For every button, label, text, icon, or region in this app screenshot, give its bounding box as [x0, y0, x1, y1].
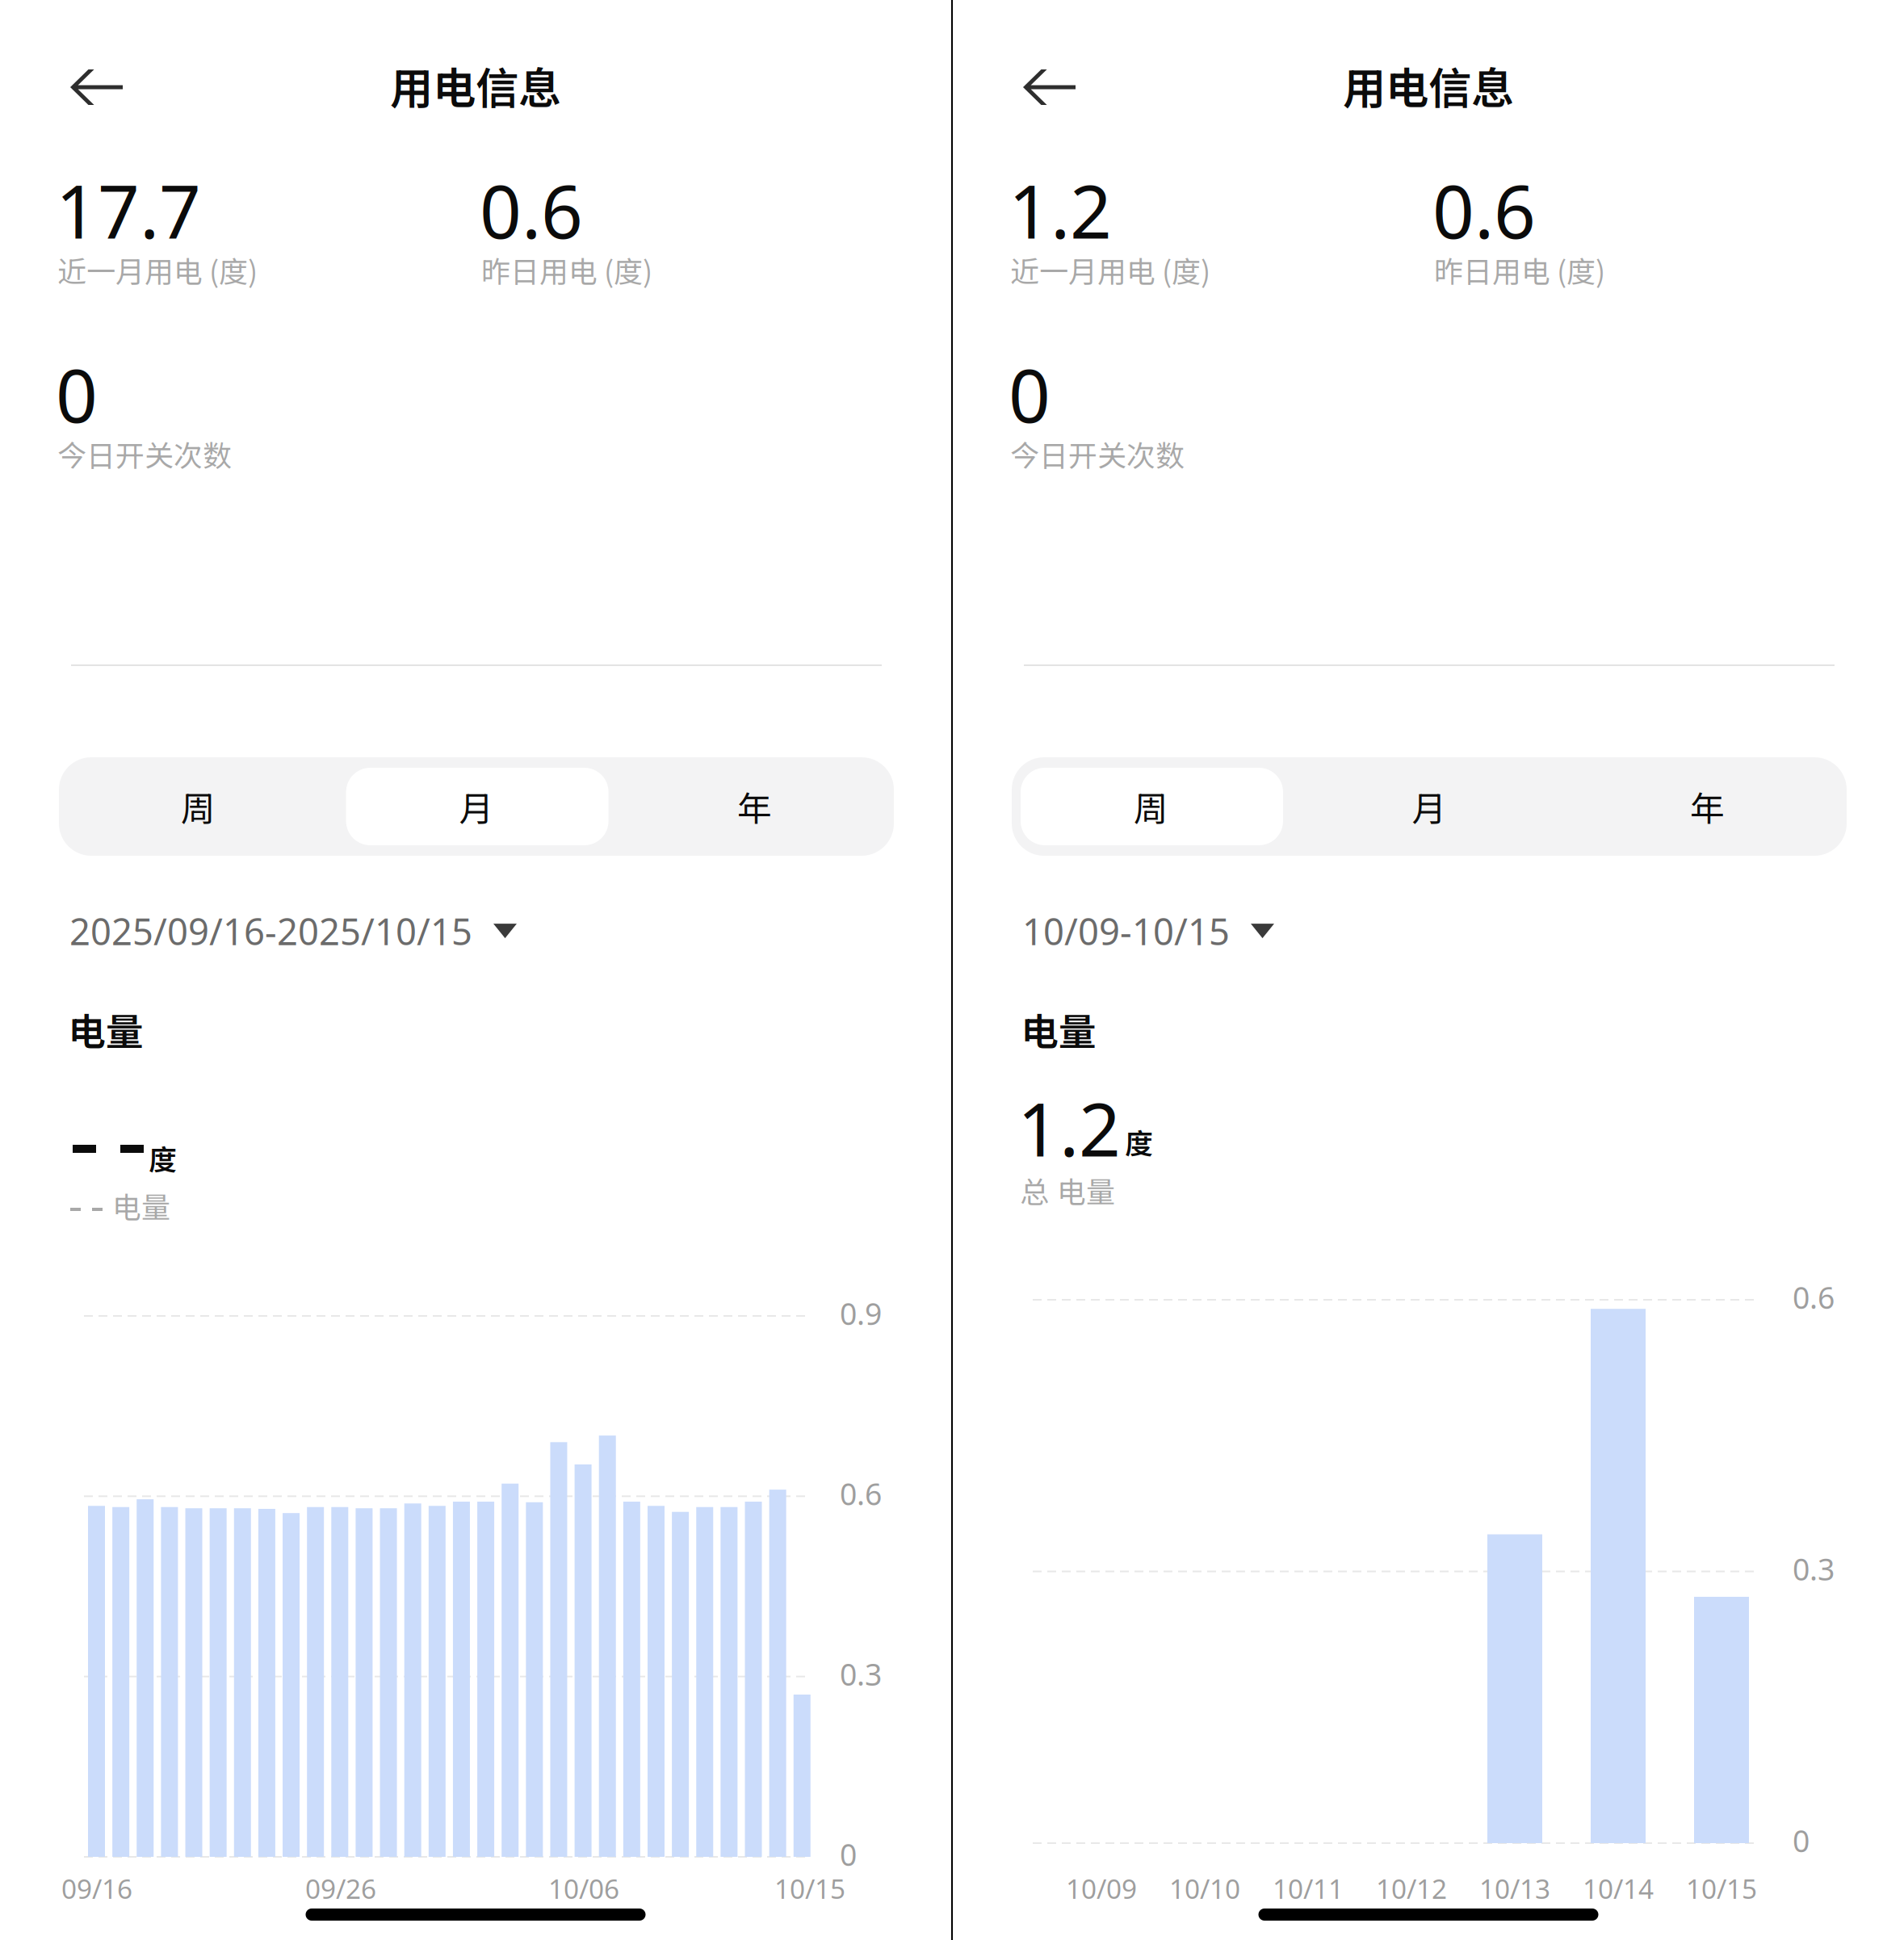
staticText: 月 — [459, 782, 494, 831]
staticText: 度 — [149, 1138, 177, 1178]
staticText: 0 — [1009, 346, 1051, 443]
staticText: 10/11 — [1273, 1871, 1344, 1906]
staticText: 1.2 — [1017, 1079, 1121, 1177]
staticText: 昨日用电 (度) — [1434, 249, 1605, 291]
staticText: 10/13 — [1479, 1871, 1550, 1906]
staticText: 用电信息 — [390, 54, 561, 116]
staticText: 昨日用电 (度) — [481, 249, 652, 291]
staticText: 1.2 — [1009, 161, 1112, 259]
staticText: 度 — [1125, 1121, 1153, 1162]
staticText: 0.6 — [840, 1474, 882, 1514]
staticText: 年 — [737, 782, 772, 831]
staticText: 0 — [1793, 1821, 1810, 1861]
staticText: 2025/09/16-2025/10/15 — [69, 907, 472, 955]
staticText: 年 — [1690, 782, 1725, 831]
staticText: 10/09 — [1066, 1871, 1137, 1906]
button[interactable]: 2025/09/16-2025/10/15 — [69, 899, 517, 963]
button[interactable]: 返回 — [61, 60, 132, 115]
staticText: 电量 — [1057, 1169, 1115, 1211]
staticText: 近一月用电 (度) — [1010, 249, 1210, 291]
staticText: 0.9 — [840, 1293, 882, 1333]
staticText: 10/09-10/15 — [1022, 907, 1230, 955]
button[interactable]: 年 — [616, 757, 894, 856]
staticText: 10/15 — [774, 1871, 845, 1906]
staticText: 0.3 — [840, 1654, 882, 1694]
staticText: 电量 — [1021, 1002, 1097, 1056]
staticText: 用电信息 — [1343, 54, 1514, 116]
staticText: 17.7 — [56, 161, 201, 259]
staticText: 今日开关次数 — [57, 433, 232, 475]
button[interactable]: 月 — [1290, 757, 1568, 856]
button[interactable]: 周 — [59, 757, 337, 856]
staticText: 0 — [840, 1834, 857, 1874]
staticText: 0.6 — [480, 161, 583, 259]
staticText: 10/10 — [1169, 1871, 1240, 1906]
staticText: 周 — [1134, 782, 1168, 831]
staticText: 10/15 — [1686, 1871, 1757, 1906]
staticText: 0 — [56, 346, 98, 443]
button[interactable]: 月 — [337, 757, 616, 856]
staticText: 总 — [1020, 1169, 1049, 1211]
staticText: 09/16 — [61, 1871, 132, 1906]
staticText: 周 — [181, 782, 216, 831]
staticText: 0.6 — [1793, 1277, 1835, 1317]
staticText: 0.6 — [1432, 161, 1536, 259]
button[interactable]: 返回 — [1014, 60, 1085, 115]
staticText: 0.3 — [1793, 1549, 1835, 1589]
button[interactable]: 周 — [1012, 757, 1290, 856]
staticText: 电量 — [112, 1184, 170, 1226]
staticText: 月 — [1412, 782, 1447, 831]
staticText: 10/12 — [1376, 1871, 1447, 1906]
staticText: 电量 — [68, 1002, 144, 1056]
staticText: 10/06 — [548, 1871, 619, 1906]
button[interactable]: 年 — [1568, 757, 1847, 856]
staticText: 近一月用电 (度) — [57, 249, 258, 291]
staticText: 今日开关次数 — [1010, 433, 1185, 475]
staticText: 10/14 — [1583, 1871, 1654, 1906]
button[interactable]: 10/09-10/15 — [1022, 899, 1274, 963]
staticText: 09/26 — [305, 1871, 376, 1906]
